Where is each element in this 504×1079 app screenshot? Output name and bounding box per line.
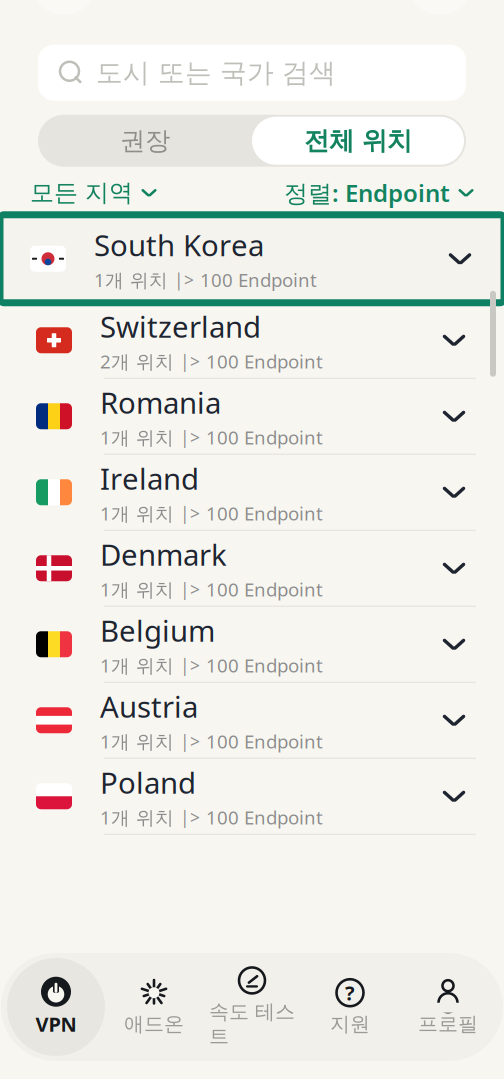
button[interactable]: 속도 테스트	[203, 958, 301, 1056]
button[interactable]: 애드온	[105, 958, 203, 1056]
staticText: 도시 또는 국가 검색	[96, 56, 336, 89]
button[interactable]: Belgium	[0, 607, 504, 683]
button[interactable]: South Korea	[0, 215, 504, 303]
staticText: 1개 위치	[94, 267, 168, 292]
staticText: VPN	[35, 1011, 76, 1037]
button[interactable]: 프로필	[399, 958, 497, 1056]
staticText: 100 Endpoint	[206, 805, 323, 830]
button[interactable]: Ireland	[0, 455, 504, 531]
button[interactable]: ?	[301, 958, 399, 1056]
staticText: Poland	[100, 763, 196, 802]
staticText: Austria	[100, 687, 198, 726]
staticText: |>	[180, 578, 200, 601]
staticText: 전체 위치	[304, 125, 412, 156]
button[interactable]: Austria	[0, 683, 504, 759]
staticText: 1개 위치	[100, 805, 174, 830]
staticText: 1개 위치	[100, 425, 174, 450]
button[interactable]: Romania	[0, 379, 504, 455]
staticText: 프로필	[418, 1012, 478, 1036]
button[interactable]: Switzerland	[0, 303, 504, 379]
staticText: 2개 위치	[100, 349, 174, 374]
staticText: 애드온	[124, 1012, 184, 1036]
staticText: |>	[180, 730, 200, 753]
button[interactable]: 도시 또는 국가 검색	[38, 45, 466, 101]
staticText: |>	[174, 268, 194, 291]
staticText: 속도 테스트	[209, 999, 295, 1048]
staticText: 100 Endpoint	[206, 425, 323, 450]
staticText: 100 Endpoint	[206, 653, 323, 678]
staticText: ?	[345, 979, 355, 1006]
staticText: 권장	[120, 125, 170, 156]
staticText: |>	[180, 654, 200, 677]
staticText: Belgium	[100, 611, 215, 650]
staticText: 100 Endpoint	[206, 729, 323, 754]
button[interactable]: Poland	[0, 759, 504, 835]
staticText: 1개 위치	[100, 653, 174, 678]
button[interactable]: 정렬: Endpoint	[284, 177, 474, 209]
button[interactable]: Denmark	[0, 531, 504, 607]
staticText: 100 Endpoint	[200, 267, 317, 292]
staticText: |>	[180, 502, 200, 525]
staticText: 정렬: Endpoint	[284, 177, 450, 209]
staticText: Ireland	[100, 459, 199, 498]
staticText: South Korea	[94, 225, 264, 264]
staticText: 1개 위치	[100, 501, 174, 526]
staticText: |>	[180, 350, 200, 373]
staticText: Switzerland	[100, 307, 261, 346]
staticText: 1개 위치	[100, 729, 174, 754]
staticText: |>	[180, 806, 200, 829]
button[interactable]: 전체 위치	[252, 117, 464, 165]
button[interactable]: 모든 지역	[30, 178, 157, 207]
button[interactable]: 권장	[38, 115, 252, 167]
staticText: Denmark	[100, 535, 227, 574]
staticText: 100 Endpoint	[206, 577, 323, 602]
staticText: 100 Endpoint	[206, 349, 323, 374]
staticText: 지원	[330, 1012, 370, 1036]
staticText: 100 Endpoint	[206, 501, 323, 526]
staticText: |>	[180, 426, 200, 449]
button[interactable]: VPN	[7, 958, 105, 1056]
staticText: 1개 위치	[100, 577, 174, 602]
staticText: 모든 지역	[30, 178, 133, 207]
staticText: Romania	[100, 383, 221, 422]
